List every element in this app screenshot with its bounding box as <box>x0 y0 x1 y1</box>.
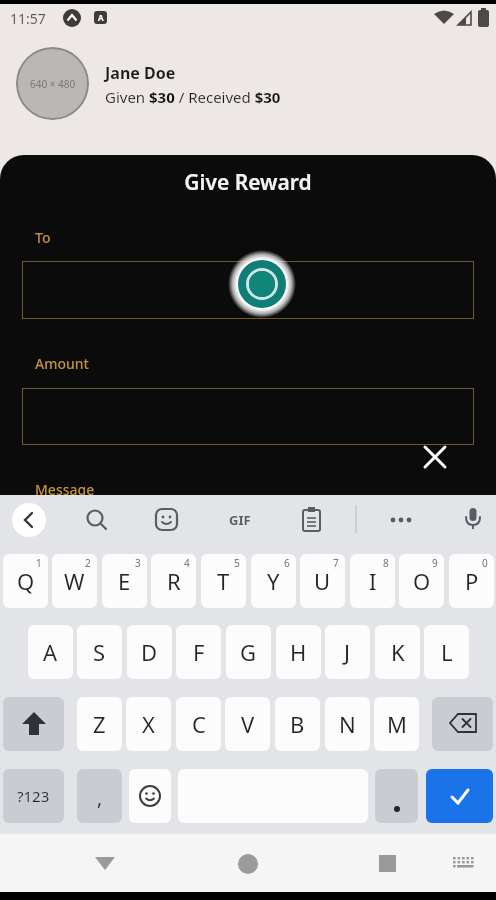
staticText: K <box>391 637 405 667</box>
staticText: 2 <box>85 556 91 570</box>
button[interactable]: H <box>276 625 321 679</box>
staticText: H <box>290 637 307 667</box>
staticText: O <box>413 566 431 596</box>
button[interactable]: T <box>201 554 246 608</box>
button[interactable]: V <box>225 697 270 751</box>
button[interactable]: E <box>102 554 147 608</box>
button[interactable]: GIF <box>222 505 258 535</box>
staticText: 9 <box>432 556 438 570</box>
staticText: Y <box>267 566 280 596</box>
staticText: S <box>93 637 106 667</box>
staticText: U <box>314 566 331 596</box>
button[interactable] <box>297 505 327 535</box>
button[interactable]: S <box>77 625 122 679</box>
button[interactable]: N <box>325 697 370 751</box>
button[interactable]: D <box>127 625 172 679</box>
button[interactable] <box>85 843 125 883</box>
button[interactable] <box>375 769 418 823</box>
staticText: T <box>217 566 230 596</box>
button[interactable]: A <box>28 625 73 679</box>
button[interactable]: M <box>374 697 419 751</box>
button[interactable]: Z <box>77 697 122 751</box>
staticText: L <box>441 637 453 667</box>
button[interactable] <box>458 504 488 534</box>
staticText: Amount <box>35 354 89 373</box>
staticText: Given $30 / Received $30 <box>105 87 281 107</box>
staticText: 6 <box>284 556 290 570</box>
staticText: 3 <box>135 556 141 570</box>
button[interactable]: P <box>449 554 494 608</box>
staticText: Give Reward <box>0 168 496 197</box>
button[interactable] <box>12 503 46 537</box>
button[interactable]: X <box>126 697 171 751</box>
button[interactable] <box>420 442 450 472</box>
button[interactable]: B <box>275 697 320 751</box>
staticText: 8 <box>383 556 389 570</box>
staticText: I <box>369 566 377 596</box>
button[interactable]: ?123 <box>3 769 64 823</box>
button[interactable] <box>82 505 112 535</box>
button[interactable]: R <box>151 554 196 608</box>
staticText: A <box>43 637 58 667</box>
button[interactable]: J <box>325 625 370 679</box>
button[interactable]: Q <box>3 554 48 608</box>
button[interactable]: G <box>226 625 271 679</box>
button[interactable]: W <box>52 554 97 608</box>
button[interactable] <box>22 261 474 319</box>
staticText: J <box>344 637 351 667</box>
staticText: 4 <box>184 556 190 570</box>
staticText: B <box>290 709 305 739</box>
button[interactable] <box>432 697 493 751</box>
staticText: 640 × 480 <box>30 77 76 91</box>
button[interactable] <box>129 769 171 823</box>
staticText: , <box>97 785 103 811</box>
staticText: Z <box>93 709 106 739</box>
button[interactable]: K <box>375 625 420 679</box>
button[interactable] <box>228 843 268 883</box>
staticText: G <box>240 637 257 667</box>
staticText: Jane Doe <box>105 62 176 84</box>
button[interactable]: , <box>77 769 122 823</box>
staticText: 1 <box>36 556 42 570</box>
staticText: P <box>465 566 479 596</box>
button[interactable]: I <box>350 554 395 608</box>
staticText: Message <box>35 480 95 495</box>
button[interactable]: Y <box>251 554 296 608</box>
button[interactable]: O <box>399 554 444 608</box>
staticText: 11:57 <box>10 9 46 28</box>
staticText: V <box>241 709 255 739</box>
button[interactable] <box>386 505 416 535</box>
button[interactable] <box>368 843 408 883</box>
staticText: Q <box>17 566 35 596</box>
button[interactable] <box>22 388 474 445</box>
staticText: N <box>339 709 356 739</box>
button[interactable]: C <box>176 697 221 751</box>
staticText: R <box>167 566 181 596</box>
staticText: ?123 <box>17 786 50 806</box>
staticText: E <box>118 566 131 596</box>
button[interactable]: L <box>424 625 469 679</box>
staticText: 5 <box>234 556 240 570</box>
button[interactable] <box>445 843 481 879</box>
button[interactable] <box>426 769 493 823</box>
staticText: GIF <box>229 511 251 529</box>
staticText: W <box>64 566 85 596</box>
staticText: To <box>35 228 51 247</box>
staticText: C <box>192 709 206 739</box>
staticText: D <box>141 637 158 667</box>
button[interactable] <box>152 505 182 535</box>
staticText: X <box>142 709 155 739</box>
button[interactable] <box>3 697 64 751</box>
staticText: 7 <box>333 556 339 570</box>
staticText: A <box>98 12 104 23</box>
button[interactable]: U <box>300 554 345 608</box>
staticText: M <box>387 709 407 739</box>
button[interactable]: F <box>176 625 221 679</box>
staticText: F <box>193 637 205 667</box>
staticText: 0 <box>482 556 488 570</box>
